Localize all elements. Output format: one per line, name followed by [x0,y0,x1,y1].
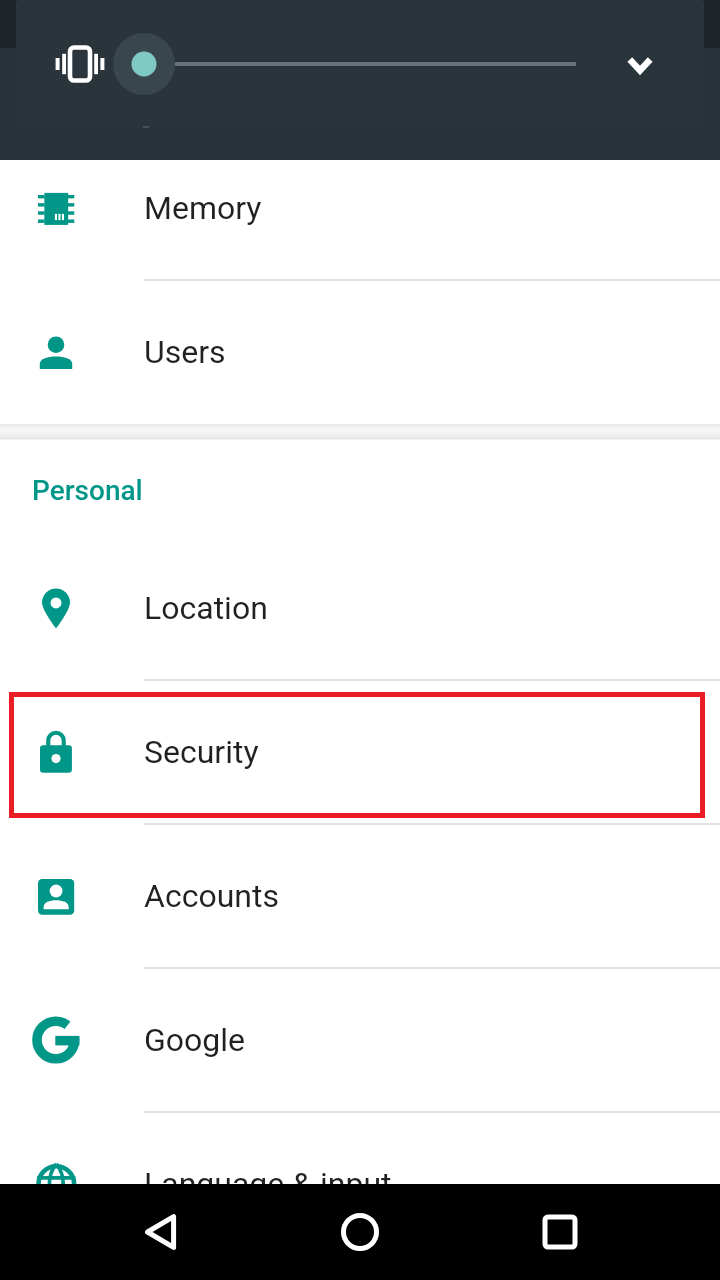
button[interactable]: Security [0,680,720,824]
staticText: Location [144,589,268,627]
button[interactable]: Volume [16,0,704,128]
staticText: Language & input [144,1165,392,1203]
staticText: Personal [32,474,143,507]
button[interactable]: Back [112,1184,208,1280]
button[interactable]: Users [0,280,720,424]
staticText: Google [144,1021,246,1059]
button[interactable]: Accounts [0,824,720,968]
staticText: Security [144,733,259,771]
staticText: Accounts [144,877,279,915]
button[interactable]: Recents [512,1184,608,1280]
button[interactable]: Location [0,536,720,680]
button[interactable]: Expand volume controls [612,36,668,92]
button[interactable]: Google [0,968,720,1112]
button[interactable]: Memory [0,136,720,280]
staticText: Memory [144,189,262,227]
staticText: Users [144,333,226,371]
button[interactable]: Language & input [0,1112,720,1256]
button[interactable]: Home [312,1184,408,1280]
